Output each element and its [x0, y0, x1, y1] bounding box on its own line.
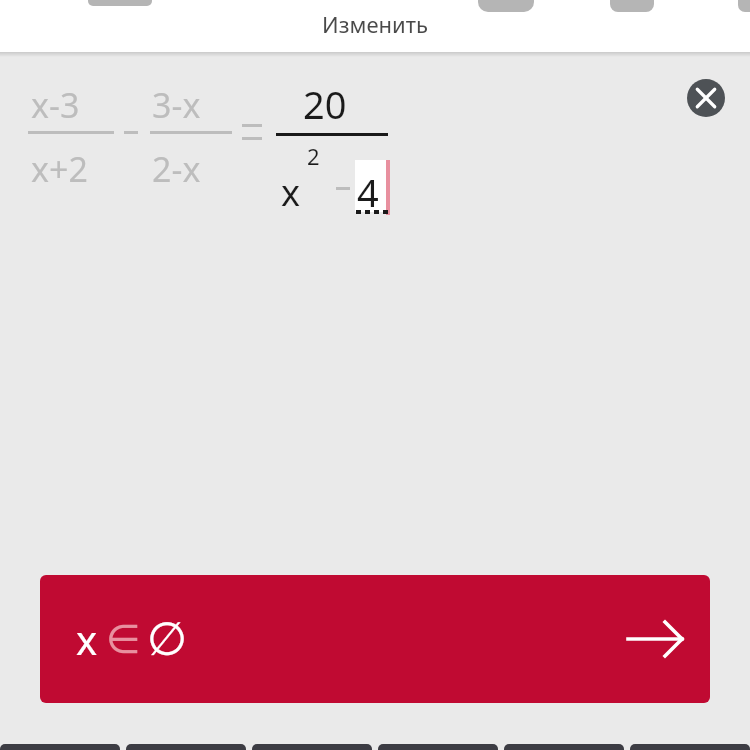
staticText: Изменить: [322, 9, 428, 39]
button[interactable]: Key: [126, 744, 246, 750]
button[interactable]: Key: [504, 744, 624, 750]
button[interactable]: Close: [687, 79, 725, 117]
button[interactable]: x: [40, 575, 710, 703]
staticText: x+2: [31, 146, 88, 192]
staticText: x: [76, 612, 98, 666]
staticText: x-3: [31, 82, 80, 128]
button[interactable]: Key: [252, 744, 372, 750]
staticText: 20: [303, 78, 347, 130]
button[interactable]: Key: [630, 744, 750, 750]
staticText: x: [281, 168, 301, 217]
staticText: 2: [307, 141, 320, 171]
staticText: 4: [357, 166, 379, 218]
button[interactable]: Key: [378, 744, 498, 750]
staticText: 3-x: [152, 82, 201, 128]
button[interactable]: Key: [0, 744, 120, 750]
staticText: ∅: [147, 612, 188, 666]
staticText: ∈: [106, 616, 141, 663]
staticText: 2-x: [152, 146, 201, 192]
